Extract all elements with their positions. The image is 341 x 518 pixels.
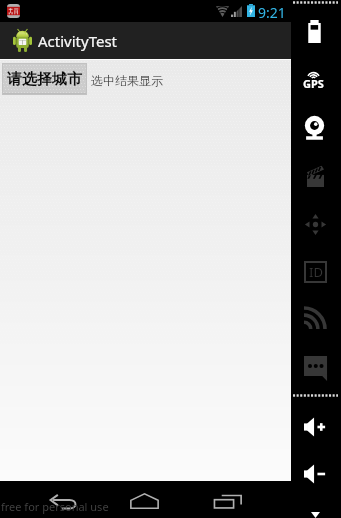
button[interactable]: Back: [50, 494, 78, 509]
staticText: 9:21: [258, 3, 286, 22]
button[interactable]: Recent apps: [213, 494, 242, 509]
staticText: ActivityTest: [38, 31, 117, 51]
button[interactable]: Device ID: [304, 261, 327, 283]
staticText: 请选择城市: [7, 70, 82, 89]
button[interactable]: 请选择城市: [2, 63, 87, 95]
button[interactable]: More: [311, 512, 320, 518]
staticText: GPS: [303, 76, 324, 91]
button[interactable]: Directional pad: [304, 213, 327, 236]
button[interactable]: Record: [307, 165, 324, 187]
button[interactable]: GPS: [303, 68, 324, 90]
button[interactable]: Cellular: [304, 308, 325, 329]
staticText: ID: [309, 263, 323, 281]
staticText: free for personal use: [1, 499, 109, 514]
button[interactable]: Volume down: [304, 464, 328, 484]
button[interactable]: Home: [130, 493, 159, 509]
staticText: 选中结果显示: [91, 73, 163, 88]
button[interactable]: Messages: [304, 356, 328, 381]
button[interactable]: Battery: [308, 20, 321, 43]
button[interactable]: Volume up: [304, 417, 328, 437]
button[interactable]: Camera: [304, 115, 325, 140]
